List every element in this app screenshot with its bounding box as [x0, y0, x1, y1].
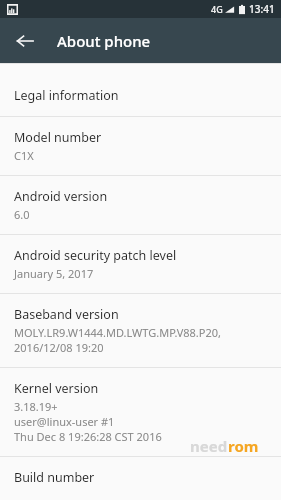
staticText: Thu Dec 8 19:26:28 CST 2016: [14, 429, 162, 444]
staticText: need: [190, 436, 228, 456]
staticText: 2016/12/08 19:20: [14, 340, 104, 355]
staticText: 3.18.19+: [14, 399, 58, 414]
staticText: C1X: [14, 148, 34, 163]
staticText: Build number: [14, 469, 95, 486]
button[interactable]: Back: [9, 25, 41, 57]
staticText: Model number: [14, 129, 102, 146]
staticText: user@linux-user #1: [14, 414, 115, 429]
button[interactable]: Android security patch level: [0, 235, 281, 293]
button[interactable]: Baseband version: [0, 294, 281, 367]
staticText: 6.0: [14, 207, 30, 222]
staticText: Android security patch level: [14, 247, 177, 264]
staticText: 13:41: [249, 2, 275, 16]
button[interactable]: Model number: [0, 117, 281, 175]
staticText: rom: [228, 436, 259, 456]
button[interactable]: Android version: [0, 176, 281, 234]
staticText: Legal information: [14, 87, 119, 104]
staticText: Android version: [14, 188, 108, 205]
button[interactable]: Legal information: [0, 75, 281, 116]
staticText: MOLY.LR9.W1444.MD.LWTG.MP.V88.P20,: [14, 325, 221, 340]
staticText: 4G: [211, 3, 223, 15]
staticText: Baseband version: [14, 306, 119, 323]
staticText: January 5, 2017: [14, 266, 94, 281]
button[interactable]: Kernel version: [0, 368, 281, 456]
staticText: About phone: [57, 31, 151, 51]
staticText: Kernel version: [14, 380, 99, 397]
button[interactable]: Build number: [0, 457, 281, 500]
